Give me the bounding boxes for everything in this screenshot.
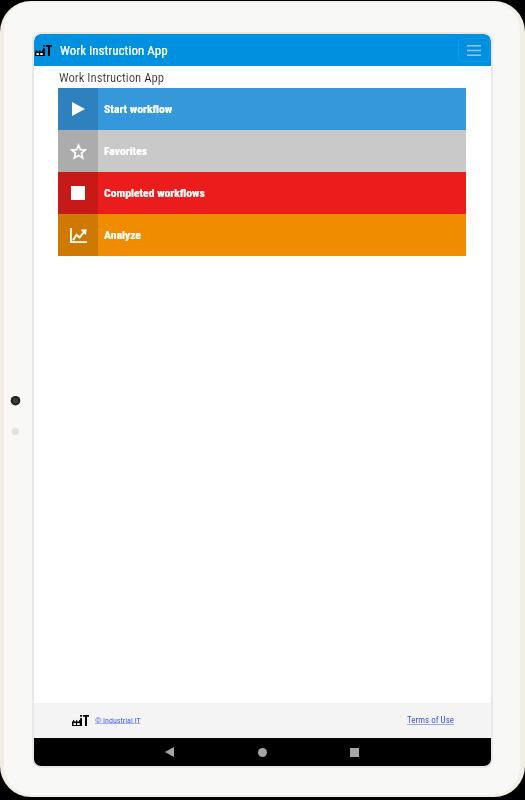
button[interactable]: © Industrial IT <box>95 703 141 738</box>
button[interactable]: Analyze <box>58 214 466 256</box>
staticText: Completed workflows <box>104 186 205 200</box>
button[interactable]: Start workflow <box>58 88 466 130</box>
button[interactable]: Home <box>234 738 290 766</box>
staticText: Start workflow <box>104 102 173 116</box>
staticText: Favorites <box>104 144 148 158</box>
staticText: Work Instruction App <box>60 43 168 58</box>
staticText: Work Instruction App <box>59 70 164 85</box>
staticText: © Industrial IT <box>95 716 141 725</box>
button[interactable]: Menu <box>458 38 490 62</box>
button[interactable]: Back <box>141 738 197 766</box>
button[interactable]: Favorites <box>58 130 466 172</box>
button[interactable]: Terms of Use <box>407 703 454 738</box>
button[interactable]: Recents <box>326 738 382 766</box>
staticText: Terms of Use <box>407 715 454 726</box>
staticText: Analyze <box>104 228 141 242</box>
button[interactable]: Completed workflows <box>58 172 466 214</box>
